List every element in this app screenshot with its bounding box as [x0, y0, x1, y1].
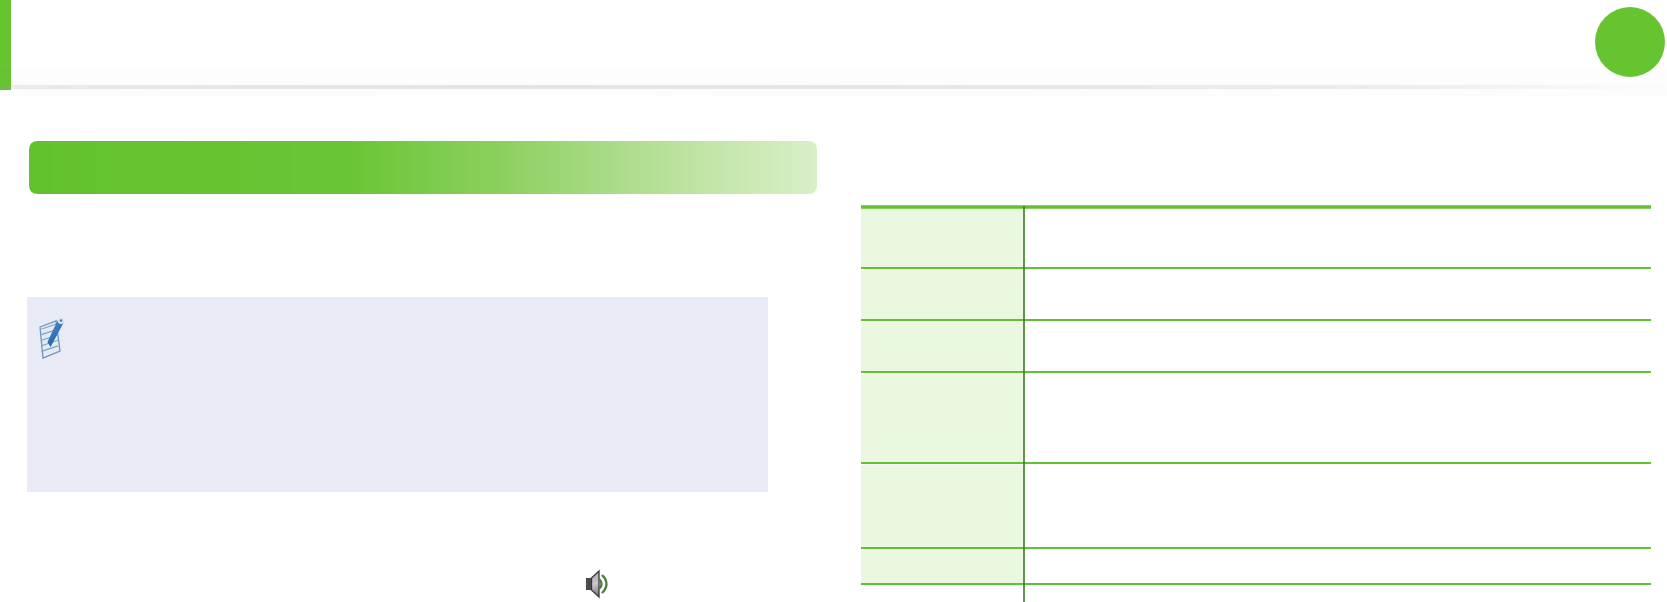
button[interactable]: Play sound — [576, 566, 616, 602]
button[interactable]: Section heading — [29, 141, 817, 194]
button[interactable]: Chapter marker — [1595, 7, 1665, 77]
